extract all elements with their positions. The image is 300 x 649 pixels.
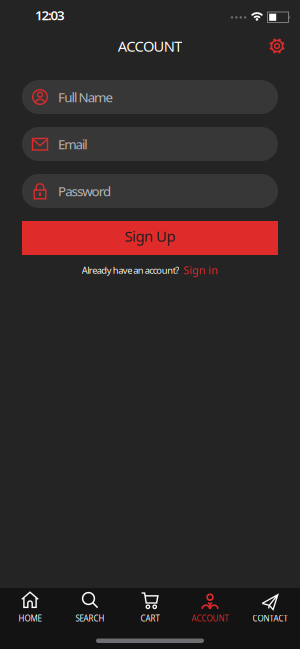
staticText: Full Name: [58, 88, 113, 106]
staticText: 12:03: [35, 6, 65, 24]
button[interactable]: Sign in: [183, 263, 218, 277]
button[interactable]: SEARCH: [60, 590, 120, 632]
button[interactable]: Full Name: [22, 80, 278, 114]
button[interactable]: CONTACT: [240, 590, 300, 632]
staticText: HOME: [18, 613, 41, 624]
button[interactable]: Password: [22, 174, 278, 208]
button[interactable]: ACCOUNT: [180, 590, 240, 632]
staticText: Already have an account?: [82, 264, 179, 276]
staticText: SEARCH: [75, 613, 104, 624]
staticText: CART: [140, 613, 159, 624]
button[interactable]: [268, 37, 286, 55]
button[interactable]: CART: [120, 590, 180, 632]
staticText: Email: [58, 135, 87, 153]
staticText: ACCOUNT: [118, 36, 182, 56]
staticText: Sign Up: [124, 226, 175, 246]
button[interactable]: Email: [22, 127, 278, 161]
button[interactable]: Sign Up: [22, 221, 278, 255]
staticText: Sign in: [183, 263, 218, 277]
button[interactable]: HOME: [0, 590, 60, 632]
staticText: ACCOUNT: [191, 613, 228, 624]
staticText: Password: [58, 182, 111, 200]
staticText: CONTACT: [252, 613, 287, 624]
